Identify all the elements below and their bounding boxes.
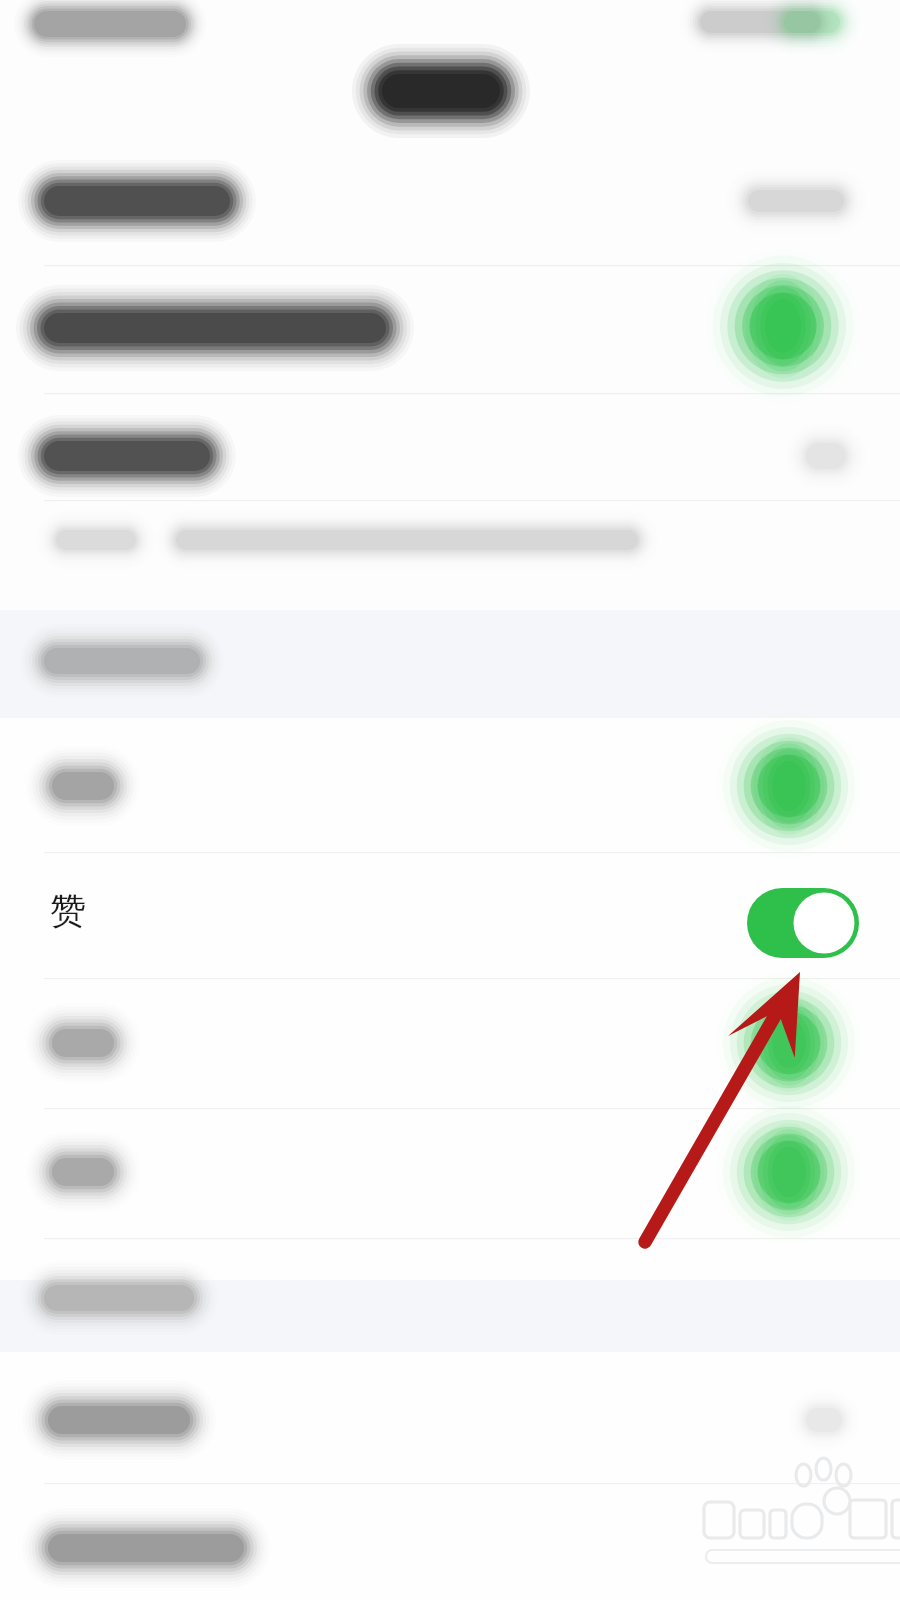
- button[interactable]: 赞 通知开关,已开启: [747, 888, 859, 958]
- button[interactable]: [0, 862, 900, 962]
- staticText: 赞: [50, 888, 86, 933]
